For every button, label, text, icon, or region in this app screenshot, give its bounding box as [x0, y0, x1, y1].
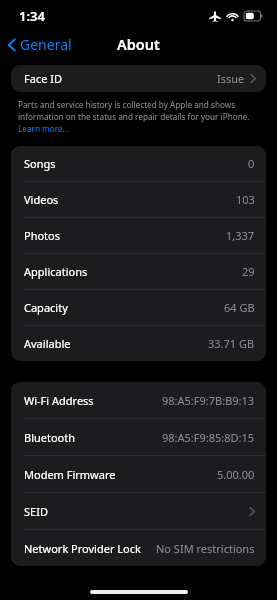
button[interactable]: Bluetooth	[11, 419, 266, 455]
staticText: 98:A5:F9:7B:B9:13	[162, 393, 255, 408]
button[interactable]: Wi-Fi Address	[11, 382, 266, 418]
button[interactable]: Available	[11, 326, 266, 361]
staticText: SEID	[24, 504, 48, 519]
staticText: Network Provider Lock	[24, 541, 141, 556]
staticText: 1:34	[19, 7, 45, 25]
button[interactable]: Photos	[11, 218, 266, 253]
staticText: 33.71 GB	[208, 336, 255, 351]
staticText: 1,337	[226, 228, 255, 243]
staticText: Wi-Fi Address	[24, 393, 94, 408]
staticText: Issue	[217, 71, 245, 86]
staticText: Bluetooth	[24, 430, 76, 445]
button[interactable]: Videos	[11, 182, 266, 217]
staticText: Photos	[24, 228, 61, 243]
other: Open	[249, 506, 255, 517]
staticText: Face ID	[24, 71, 62, 86]
button[interactable]: Songs	[11, 146, 266, 181]
button[interactable]: Face ID	[11, 65, 266, 92]
staticText: Modem Firmware	[24, 467, 116, 482]
other: Open	[250, 73, 256, 84]
staticText: 103	[236, 192, 255, 207]
staticText: General	[20, 35, 72, 54]
staticText: 5.00.00	[217, 467, 255, 482]
staticText: 29	[242, 264, 255, 279]
button[interactable]: Applications	[11, 254, 266, 289]
button[interactable]: SEID	[11, 493, 266, 529]
staticText: 98:A5:F9:85:8D:15	[162, 430, 255, 445]
staticText: 64 GB	[224, 300, 255, 315]
staticText: Applications	[24, 264, 88, 279]
button[interactable]: Modem Firmware	[11, 456, 266, 492]
staticText: Parts and service history is collected b…	[18, 99, 259, 134]
staticText: No SIM restrictions	[156, 541, 255, 556]
staticText: Capacity	[24, 300, 68, 315]
button[interactable]: General	[0, 33, 80, 56]
staticText: Songs	[24, 156, 56, 171]
button[interactable]: Capacity	[11, 290, 266, 325]
button[interactable]: Network Provider Lock	[11, 530, 266, 566]
staticText: Videos	[24, 192, 59, 207]
staticText: 0	[248, 156, 255, 171]
staticText: About	[117, 34, 160, 54]
staticText: Available	[24, 336, 71, 351]
